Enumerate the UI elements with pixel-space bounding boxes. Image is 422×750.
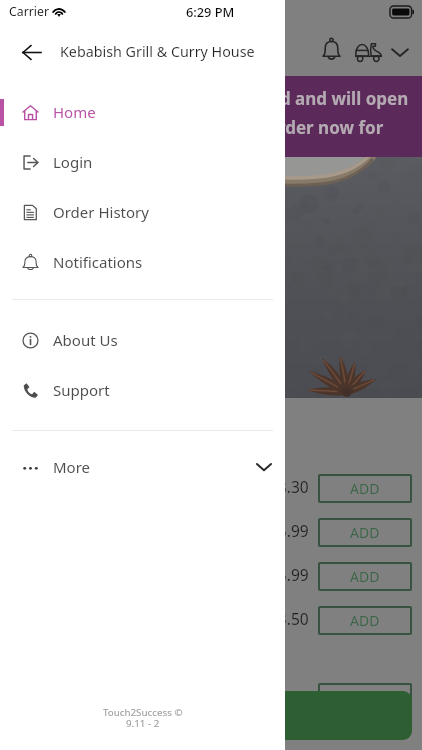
button[interactable]: ADD (318, 606, 412, 635)
button[interactable]: Delivery options (350, 34, 386, 70)
staticText: tomorrow. You can pre-order now for (70, 116, 384, 139)
staticText: Restaurant is closed and will open (120, 87, 409, 110)
staticText: 6:29 PM (186, 3, 235, 20)
button[interactable]: ADD (318, 518, 412, 547)
staticText: £3.50 (269, 608, 309, 629)
button[interactable]: £3.50 (0, 598, 422, 642)
staticText: ADD (350, 567, 380, 586)
button[interactable]: Order History (0, 187, 285, 237)
staticText: Carrier (9, 3, 50, 20)
staticText: Support (53, 380, 110, 400)
button[interactable]: ADD (318, 562, 412, 591)
button[interactable]: Back (0, 28, 63, 76)
button[interactable]: Home (0, 87, 285, 137)
button[interactable]: Login (0, 137, 285, 187)
button[interactable] (12, 691, 412, 740)
staticText: 9.11 - 2 (126, 717, 160, 730)
staticText: ADD (350, 479, 380, 498)
staticText: ADD (350, 611, 380, 630)
staticText: Kebabish Grill & Curry House (60, 42, 255, 61)
staticText: Order History (53, 202, 149, 222)
staticText: Notifications (53, 252, 143, 272)
staticText: Login (53, 152, 93, 172)
staticText: About Us (53, 330, 118, 350)
staticText: Touch2Success © (103, 706, 183, 719)
button[interactable]: More (0, 442, 285, 492)
button[interactable]: About Us (0, 315, 285, 365)
button[interactable]: £8.30 (0, 466, 422, 510)
button[interactable]: Notifications (312, 30, 350, 68)
staticText: £5.99 (269, 564, 309, 585)
button[interactable]: Notifications (0, 237, 285, 287)
button[interactable]: Support (0, 365, 285, 415)
staticText: ADD (350, 523, 380, 542)
button[interactable]: Expand (384, 36, 416, 68)
button[interactable]: £5.99 (0, 510, 422, 554)
button[interactable]: ADD (318, 474, 412, 503)
staticText: More (53, 457, 91, 477)
button[interactable]: £5.99 (0, 554, 422, 598)
staticText: Home (53, 102, 96, 122)
staticText: £5.99 (269, 520, 309, 541)
staticText: £8.30 (269, 476, 309, 497)
